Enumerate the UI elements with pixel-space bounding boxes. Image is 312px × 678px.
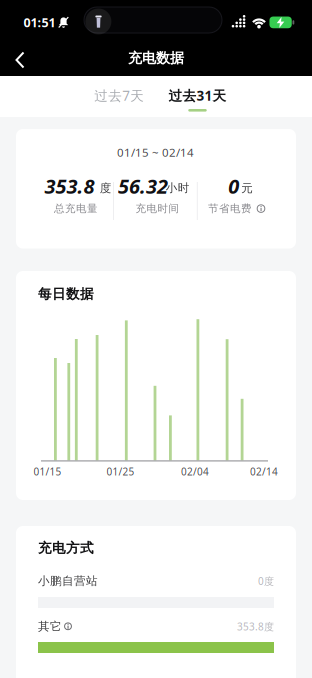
staticText: 56.32 xyxy=(118,172,168,200)
staticText: 02/14 xyxy=(250,465,278,478)
staticText: 充电数据 xyxy=(128,49,184,67)
button[interactable]: 过去31天 xyxy=(152,83,242,117)
staticText: 节省电费 xyxy=(208,202,252,215)
staticText: 小鹏自营站 xyxy=(38,574,98,588)
button[interactable] xyxy=(0,45,34,75)
staticText: 0度 xyxy=(258,574,274,588)
staticText: 02/04 xyxy=(181,465,209,478)
staticText: 充电方式 xyxy=(38,539,94,556)
staticText: 01/15 ~ 02/14 xyxy=(117,144,194,160)
staticText: 过去31天 xyxy=(168,86,226,105)
staticText: 总充电量 xyxy=(54,202,98,215)
staticText: 353.8 xyxy=(44,172,94,200)
staticText: 01/25 xyxy=(107,465,135,478)
button[interactable] xyxy=(62,620,74,632)
button[interactable]: 节省电费 xyxy=(208,202,267,215)
staticText: 小时 xyxy=(166,181,190,195)
staticText: 0 xyxy=(228,172,239,200)
staticText: 每日数据 xyxy=(38,285,94,302)
staticText: 元 xyxy=(241,181,253,195)
staticText: 充电时间 xyxy=(135,202,179,215)
staticText: 其它 xyxy=(38,619,62,634)
staticText: 353.8度 xyxy=(237,620,274,633)
staticText: 01/15 xyxy=(33,465,61,478)
staticText: 01:51 xyxy=(23,14,55,31)
staticText: 过去7天 xyxy=(94,86,144,105)
staticText: 度 xyxy=(100,181,112,195)
button[interactable]: 过去7天 xyxy=(74,78,164,112)
